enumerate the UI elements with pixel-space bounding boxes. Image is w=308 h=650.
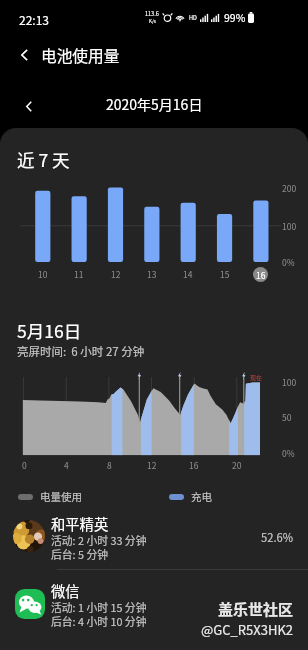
staticText: 电池使用量 (41, 44, 120, 67)
staticText: 盖乐世社区 (218, 598, 294, 620)
button[interactable]: Back (0, 34, 40, 76)
staticText: 亮屏时间: 6 小时 27 分钟 (17, 343, 145, 360)
staticText: K/s (149, 18, 156, 25)
staticText: 11 (74, 268, 84, 280)
staticText: 5月16日 (17, 318, 82, 343)
staticText: 20 (232, 459, 242, 471)
button[interactable]: 16 (253, 267, 268, 282)
staticText: 16 (256, 269, 266, 281)
staticText: 微信 (51, 580, 80, 601)
staticText: @GC_R5X3HK2 (201, 620, 294, 639)
staticText: 50 (282, 411, 292, 423)
button[interactable]: 电量使用 (18, 489, 82, 504)
staticText: 0 (22, 459, 27, 471)
staticText: 0% (282, 256, 295, 268)
staticText: 10 (38, 268, 48, 280)
staticText: 200 (282, 182, 297, 194)
staticText: 8 (107, 459, 112, 471)
staticText: 充电 (191, 489, 212, 504)
staticText: 12 (147, 459, 157, 471)
staticText: 后台: 5 分钟 (51, 546, 109, 562)
staticText: 13 (147, 268, 157, 280)
staticText: 99% (224, 10, 246, 25)
button[interactable]: 充电 (169, 489, 212, 504)
button[interactable]: 微信 (0, 577, 308, 637)
staticText: 12 (111, 268, 121, 280)
staticText: HD (189, 14, 197, 22)
staticText: 和平精英 (51, 513, 109, 534)
staticText: 15 (220, 268, 230, 280)
staticText: 活动: 2 小时 33 分钟 (51, 532, 147, 548)
staticText: 52.6% (261, 529, 294, 545)
staticText: 2020年5月16日 (106, 94, 203, 114)
staticText: 22:13 (19, 11, 49, 28)
staticText: 16 (189, 459, 199, 471)
button[interactable]: 和平精英 (0, 510, 308, 570)
staticText: 活动: 1 小时 15 分钟 (51, 599, 147, 615)
staticText: 电量使用 (40, 489, 82, 504)
staticText: 100 (282, 220, 297, 232)
staticText: 14 (183, 268, 193, 280)
staticText: 4 (64, 459, 69, 471)
staticText: 近 7 天 (17, 147, 70, 172)
staticText: 113.6 (145, 10, 159, 18)
staticText: 现在 (250, 373, 263, 382)
staticText: 后台: 4 小时 10 分钟 (51, 613, 147, 629)
staticText: 0% (282, 447, 295, 459)
staticText: 100 (282, 376, 297, 388)
button[interactable]: Previous day (15, 92, 43, 120)
